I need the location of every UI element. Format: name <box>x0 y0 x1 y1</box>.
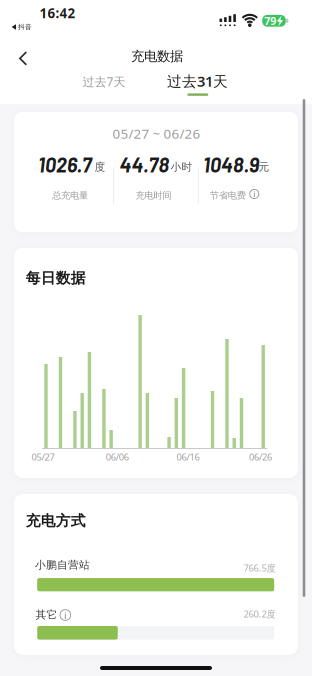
button[interactable] <box>250 189 259 198</box>
staticText: 充电方式 <box>26 512 86 530</box>
button[interactable]: 过去7天 <box>59 68 149 94</box>
staticText: 元 <box>258 160 269 173</box>
staticText: 766.5度 <box>243 562 275 574</box>
staticText: 260.2度 <box>243 608 275 620</box>
staticText: 06/06 <box>106 451 129 463</box>
staticText: 节省电费 <box>210 190 246 201</box>
staticText: 过去7天 <box>82 73 125 89</box>
staticText: 总充电量 <box>52 190 88 201</box>
button[interactable] <box>60 610 71 620</box>
staticText: 44.78 <box>119 152 169 176</box>
button[interactable] <box>0 36 42 80</box>
staticText: 1026.7 <box>38 152 92 176</box>
staticText: 每日数据 <box>26 269 86 287</box>
staticText: 抖音 <box>18 23 32 31</box>
staticText: 小鹏自营站 <box>35 558 90 571</box>
staticText: 06/26 <box>249 451 272 463</box>
staticText: 其它 <box>35 608 57 621</box>
staticText: 06/16 <box>176 451 199 463</box>
staticText: 05/27 ~ 06/26 <box>112 125 200 142</box>
button[interactable]: 抖音 <box>8 20 41 34</box>
staticText: 79 <box>264 14 276 28</box>
staticText: 16:42 <box>39 4 75 22</box>
staticText: 05/27 <box>31 451 54 463</box>
staticText: 充电数据 <box>131 48 183 64</box>
staticText: 度 <box>94 160 105 173</box>
staticText: 1048.9 <box>203 152 259 176</box>
staticText: 过去31天 <box>167 71 228 91</box>
staticText: 小时 <box>170 160 192 173</box>
button[interactable]: 过去31天 <box>152 68 242 94</box>
staticText: 充电时间 <box>135 190 171 201</box>
